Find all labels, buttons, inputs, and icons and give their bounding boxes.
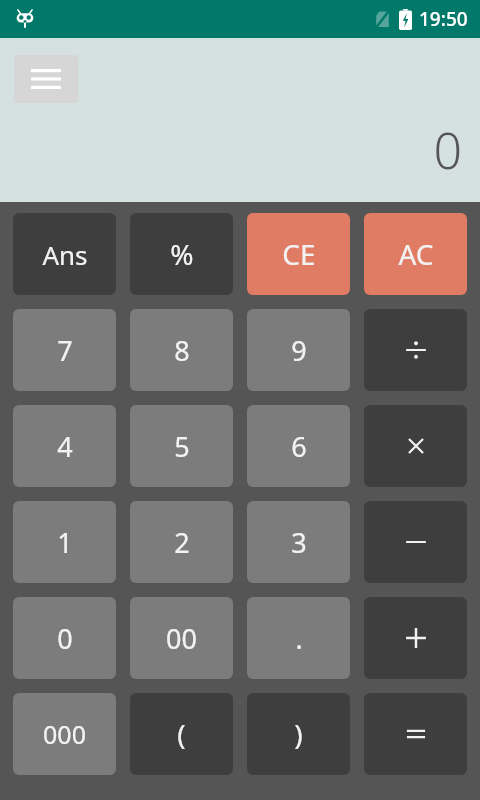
button[interactable]: 3 (247, 501, 350, 583)
button[interactable]: 000 (13, 693, 116, 775)
staticText: 7 (57, 332, 73, 369)
staticText: 6 (291, 428, 307, 465)
staticText: 3 (291, 524, 307, 561)
staticText: ) (294, 715, 303, 753)
button[interactable]: × (364, 405, 467, 487)
button[interactable]: Ans (13, 213, 116, 295)
button[interactable]: 7 (13, 309, 116, 391)
staticText: 00 (166, 620, 197, 657)
button[interactable]: 9 (247, 309, 350, 391)
button[interactable]: = (364, 693, 467, 775)
staticText: 0 (57, 620, 73, 657)
button[interactable]: . (247, 597, 350, 679)
staticText: 19:50 (419, 6, 468, 32)
staticText: 000 (43, 717, 86, 751)
staticText: . (295, 620, 303, 657)
button[interactable]: Menu (14, 55, 78, 103)
button[interactable]: AC (364, 213, 467, 295)
staticText: % (170, 235, 194, 273)
staticText: 0 (433, 116, 462, 184)
button[interactable]: 0 (13, 597, 116, 679)
staticText: ( (177, 715, 186, 753)
staticText: Ans (42, 237, 88, 272)
button[interactable]: CE (247, 213, 350, 295)
button[interactable]: 8 (130, 309, 233, 391)
button[interactable]: 5 (130, 405, 233, 487)
button[interactable]: ( (130, 693, 233, 775)
button[interactable]: ÷ (364, 309, 467, 391)
staticText: CE (282, 235, 316, 273)
button[interactable]: 00 (130, 597, 233, 679)
staticText: 8 (174, 332, 190, 369)
button[interactable]: 2 (130, 501, 233, 583)
staticText: 9 (291, 332, 307, 369)
button[interactable]: ) (247, 693, 350, 775)
button[interactable]: 6 (247, 405, 350, 487)
button[interactable]: 4 (13, 405, 116, 487)
staticText: 2 (174, 524, 190, 561)
staticText: 5 (174, 428, 190, 465)
button[interactable]: − (364, 501, 467, 583)
staticText: 1 (57, 524, 73, 561)
button[interactable]: 1 (13, 501, 116, 583)
staticText: AC (398, 235, 434, 273)
staticText: 4 (57, 428, 73, 465)
button[interactable]: % (130, 213, 233, 295)
button[interactable]: + (364, 597, 467, 679)
